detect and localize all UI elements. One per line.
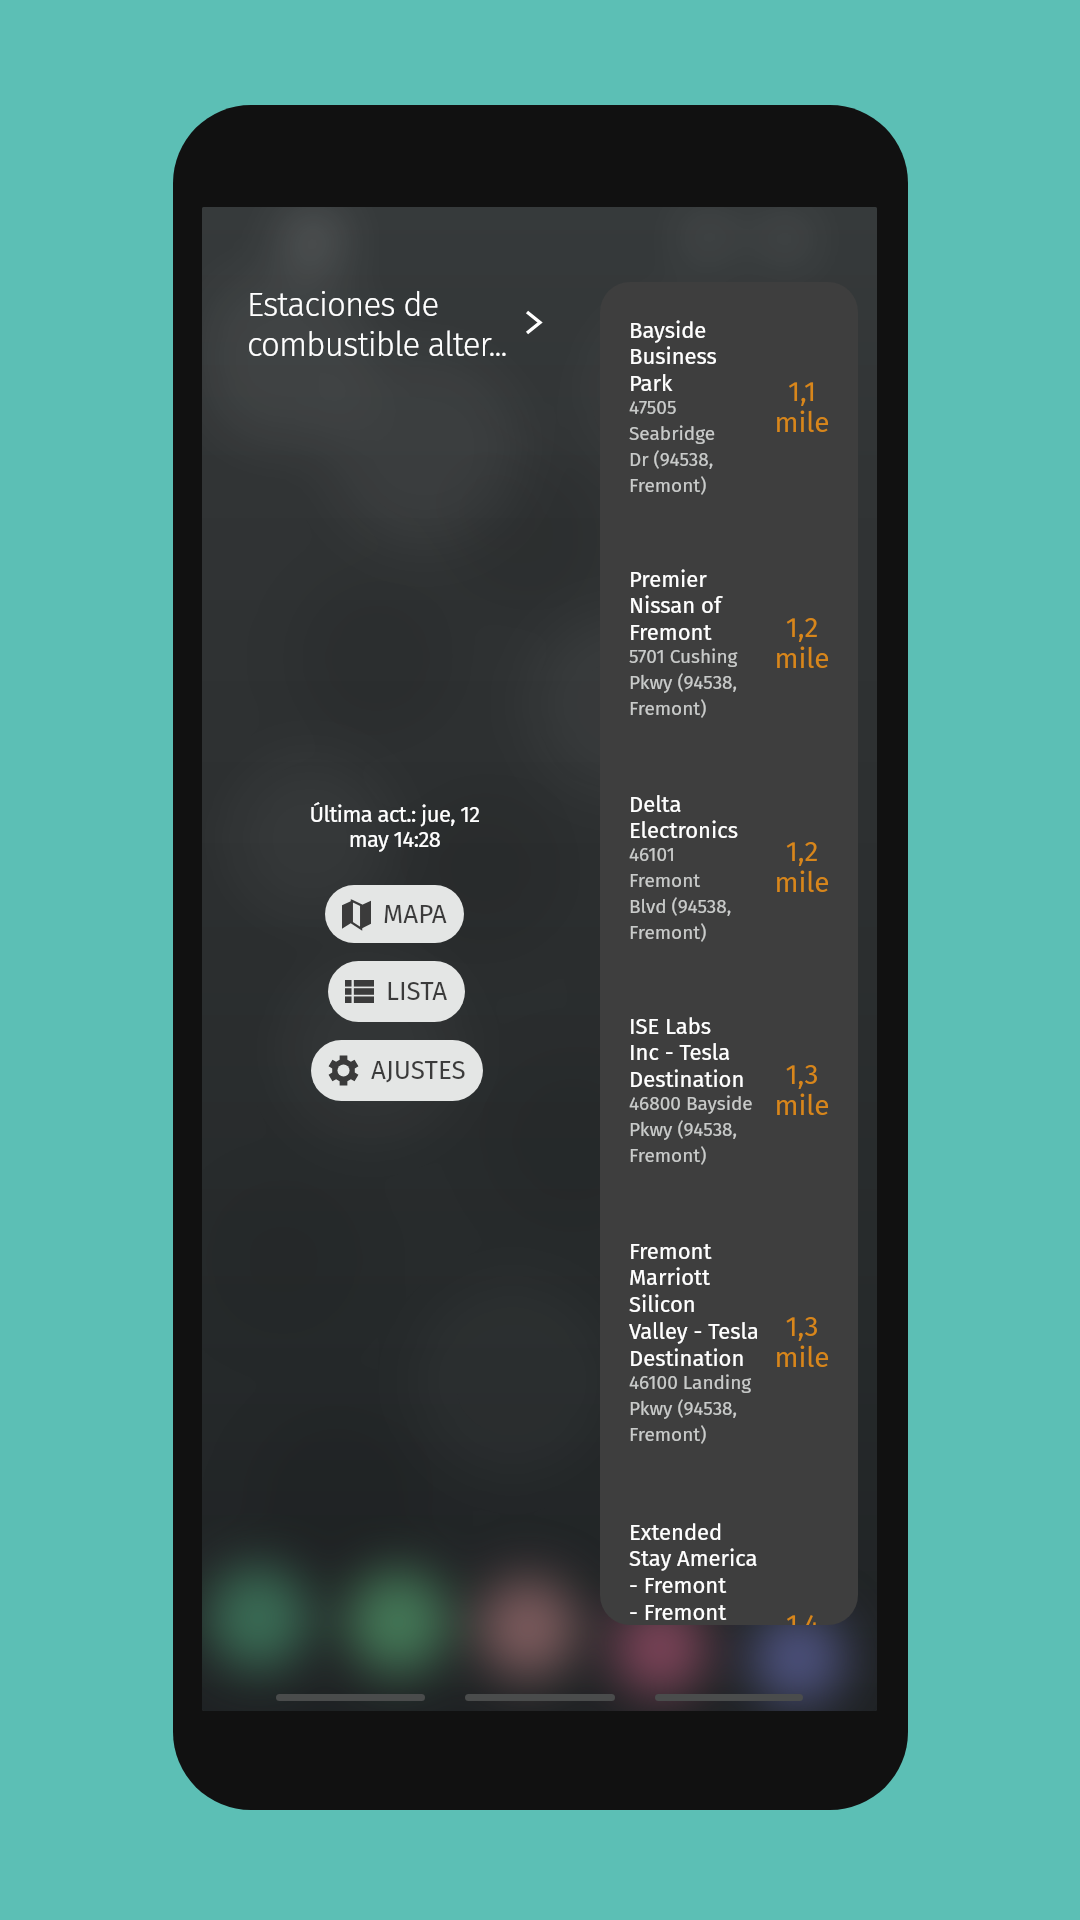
staticText: 5701 Cushing Pkwy (94538, Fremont): [629, 645, 738, 720]
button[interactable]: Mapa: [325, 885, 464, 943]
button[interactable]: Premier Nissan of Fremont: [600, 558, 858, 728]
staticText: 46800 Bayside Pkwy (94538, Fremont): [629, 1092, 753, 1167]
staticText: 46100 Landing Pkwy (94538, Fremont): [629, 1371, 752, 1446]
button[interactable]: Ajustes: [311, 1040, 483, 1101]
staticText: 1,2 mile: [774, 835, 830, 900]
staticText: 1,4: [786, 1608, 819, 1625]
staticText: LISTA: [386, 976, 448, 1007]
staticText: Delta Electronics: [629, 791, 738, 843]
staticText: Premier Nissan of Fremont: [629, 566, 722, 645]
button[interactable]: Extended Stay America - Fremont - Fremon…: [600, 1511, 858, 1625]
other: Lista: [345, 980, 374, 1003]
button[interactable]: Lista: [328, 961, 465, 1022]
staticText: Estaciones de combustible alter...: [247, 285, 507, 365]
staticText: AJUSTES: [371, 1055, 466, 1086]
button[interactable]: ISE Labs Inc - Tesla Destination: [600, 1005, 858, 1175]
staticText: 1,3 mile: [774, 1058, 830, 1123]
button[interactable]: Delta Electronics: [600, 783, 858, 952]
staticText: Fremont Marriott Silicon Valley - Tesla …: [629, 1238, 757, 1371]
staticText: Última act.: jue, 12 may 14:28: [202, 801, 587, 853]
staticText: 1,3 mile: [774, 1310, 830, 1375]
staticText: 1,2 mile: [774, 611, 830, 676]
other: Ajustes: [328, 1055, 359, 1086]
button[interactable]: Estaciones de combustible alter...: [247, 285, 547, 365]
button[interactable]: Abrir lista: [516, 301, 551, 336]
button[interactable]: Bayside Business Park: [600, 309, 858, 505]
staticText: Bayside Business Park: [629, 317, 717, 396]
staticText: 1,1 mile: [774, 375, 830, 440]
staticText: 46101 Fremont Blvd (94538, Fremont): [629, 843, 732, 944]
other: Mapa: [342, 899, 371, 930]
staticText: ISE Labs Inc - Tesla Destination: [629, 1013, 745, 1092]
staticText: MAPA: [383, 899, 447, 930]
button[interactable]: Fremont Marriott Silicon Valley - Tesla …: [600, 1230, 858, 1454]
staticText: 47505 Seabridge Dr (94538, Fremont): [629, 396, 716, 497]
staticText: Extended Stay America - Fremont - Fremon…: [629, 1519, 757, 1625]
